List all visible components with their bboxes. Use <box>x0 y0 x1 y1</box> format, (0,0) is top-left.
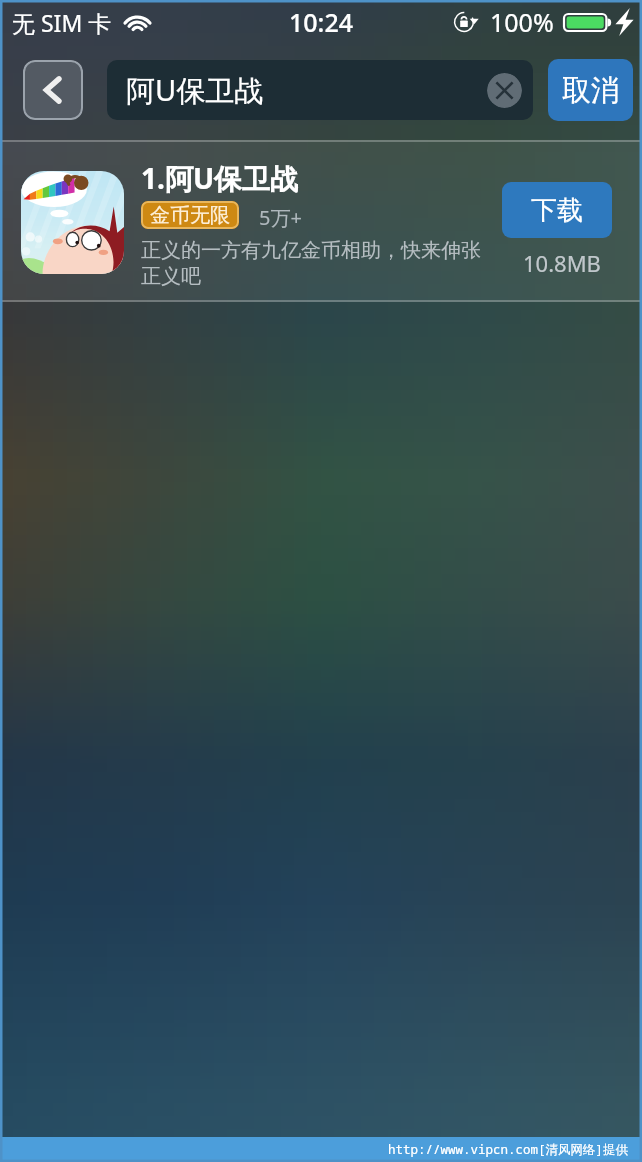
staticText: 100% <box>490 5 554 39</box>
staticText: 正义的一方有九亿金币相助，快来伸张正义吧 <box>141 238 491 289</box>
staticText: 10.8MB <box>523 248 601 278</box>
button[interactable]: 下载 <box>502 182 612 238</box>
staticText: 1.阿U保卫战 <box>141 159 299 197</box>
button[interactable]: 返回 <box>23 60 83 120</box>
staticText: 10:24 <box>289 5 354 39</box>
staticText: 5万+ <box>259 204 302 231</box>
staticText: 无 SIM 卡 <box>12 7 112 38</box>
button[interactable]: 取消 <box>548 59 633 121</box>
staticText: 下载 <box>531 194 583 227</box>
staticText: 取消 <box>562 72 620 109</box>
staticText: 金币无限 <box>150 203 230 228</box>
button[interactable]: 1.阿U保卫战 <box>0 142 642 300</box>
staticText: http://www.vipcn.com[清风网络]提供 <box>388 1141 629 1158</box>
staticText: 阿U保卫战 <box>126 70 264 110</box>
button[interactable]: 阿U保卫战 <box>107 60 533 120</box>
button[interactable]: 清除 <box>487 73 522 108</box>
